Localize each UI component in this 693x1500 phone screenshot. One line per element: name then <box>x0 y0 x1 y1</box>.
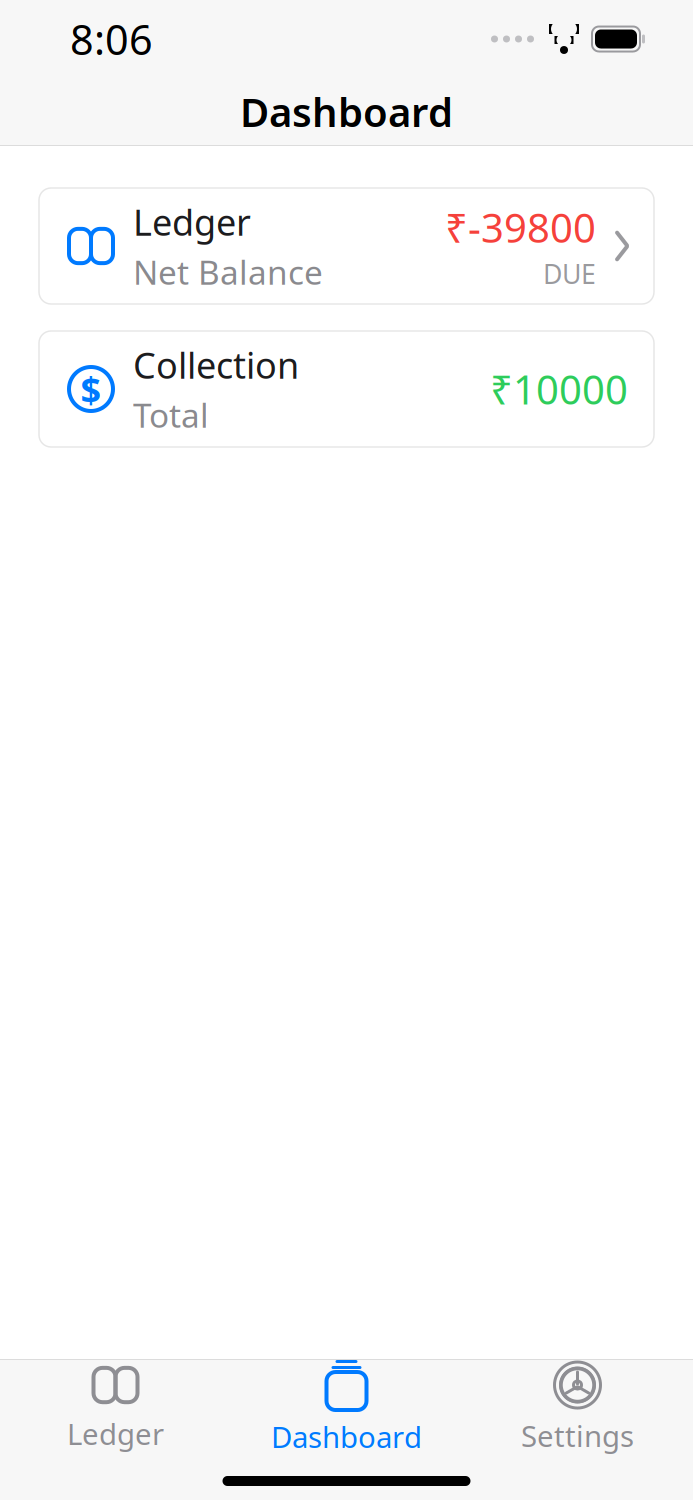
staticText: Collection <box>133 341 299 389</box>
staticText: Dashboard <box>240 85 453 138</box>
staticText: Total <box>133 393 209 437</box>
button[interactable]: Ledger <box>0 188 693 304</box>
staticText: Dashboard <box>271 1417 422 1456</box>
staticText: Ledger <box>133 198 251 246</box>
staticText: DUE <box>543 256 596 291</box>
staticText: ₹10000 <box>490 362 628 415</box>
staticText: Settings <box>521 1416 634 1455</box>
button[interactable]: Ledger <box>0 1360 231 1456</box>
staticText: Ledger <box>67 1414 164 1453</box>
button[interactable]: Dashboard <box>231 1360 462 1456</box>
button[interactable]: Settings <box>462 1360 693 1456</box>
staticText: $ <box>80 365 101 413</box>
staticText: Net Balance <box>133 250 323 294</box>
staticText: ₹-39800 <box>445 201 596 254</box>
button[interactable]: $ <box>0 331 693 447</box>
staticText: 8:06 <box>70 12 153 66</box>
